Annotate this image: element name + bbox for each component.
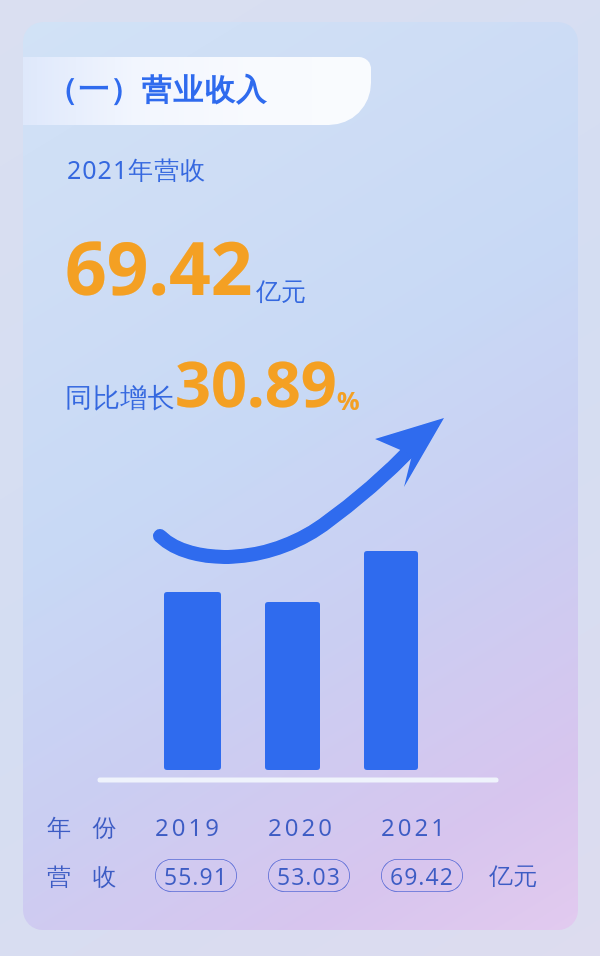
button[interactable]: （一）营业收入 [23, 57, 371, 125]
button[interactable]: Revenue 69.42 [381, 859, 463, 892]
staticText: 69.42 [65, 217, 253, 316]
staticText: 2019 [155, 810, 268, 843]
staticText: 69.42 [390, 860, 454, 891]
staticText: 同比增长 [65, 381, 175, 415]
staticText: 2021年营收 [67, 152, 207, 186]
staticText: 53.03 [277, 860, 341, 891]
button[interactable]: Revenue 55.91 [155, 859, 237, 892]
staticText: 年 份 [47, 810, 155, 843]
staticText: 亿元 [489, 861, 537, 891]
staticText: 亿元 [256, 276, 306, 307]
staticText: 2021 [381, 810, 494, 843]
button[interactable]: Revenue 53.03 [268, 859, 350, 892]
staticText: % [337, 383, 360, 417]
staticText: （一）营业收入 [47, 71, 268, 109]
staticText: 55.91 [164, 860, 228, 891]
staticText: 营 收 [47, 859, 155, 892]
staticText: 2020 [268, 810, 381, 843]
staticText: 30.89 [175, 340, 337, 426]
